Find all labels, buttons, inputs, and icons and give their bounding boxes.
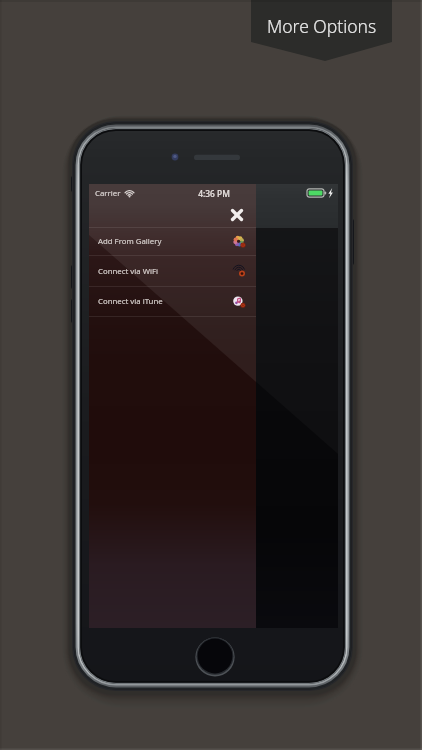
staticText: 4:36 PM: [198, 188, 230, 199]
staticText: Add From Gallery: [98, 236, 162, 247]
staticText: More Options: [267, 14, 377, 38]
button[interactable]: Connect via WiFi: [89, 256, 256, 286]
staticText: Connect via WiFi: [98, 266, 158, 277]
staticText: Carrier: [95, 188, 121, 199]
button[interactable]: Connect via iTune: [89, 287, 256, 316]
button[interactable]: More Options: [251, 0, 392, 62]
staticText: Connect via iTune: [98, 296, 163, 307]
button[interactable]: Add From Gallery: [89, 228, 256, 255]
button[interactable]: Close: [226, 204, 248, 226]
